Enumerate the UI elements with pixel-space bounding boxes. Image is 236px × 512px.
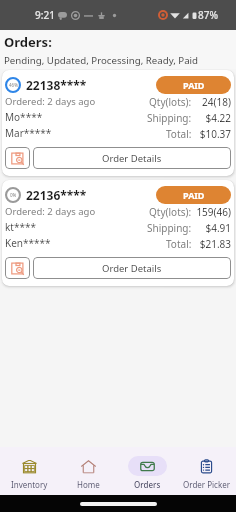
staticText: Qty(lots):: [149, 95, 192, 109]
staticText: Mar*****: [5, 126, 52, 140]
staticText: $4.91: [195, 221, 231, 235]
staticText: PAID: [183, 79, 205, 91]
staticText: Orders: [134, 479, 161, 490]
staticText: Ordered: 2 days ago: [5, 95, 96, 108]
staticText: kt****: [5, 220, 36, 234]
staticText: Order Picker: [183, 479, 231, 490]
staticText: Order Details: [102, 152, 162, 165]
staticText: PAID: [183, 189, 205, 201]
staticText: 22136****: [26, 187, 87, 203]
staticText: $10.37: [195, 127, 231, 141]
staticText: 0%: [10, 192, 17, 198]
button[interactable]: 46%: [2, 70, 234, 176]
button[interactable]: Track package: [5, 147, 30, 169]
staticText: Order Details: [102, 262, 162, 275]
staticText: Qty(lots):: [149, 205, 192, 219]
staticText: $4.22: [195, 111, 231, 125]
staticText: Total:: [166, 127, 192, 141]
staticText: Pending, Updated, Processing, Ready, Pai…: [4, 54, 199, 67]
button[interactable]: 0%: [2, 180, 234, 286]
staticText: Total:: [166, 237, 192, 251]
staticText: 87%: [198, 8, 218, 22]
staticText: Shipping:: [147, 111, 192, 125]
button[interactable]: Inventory: [0, 450, 59, 492]
staticText: 22138****: [26, 77, 87, 93]
staticText: Mo****: [5, 110, 43, 124]
button[interactable]: Home: [59, 450, 118, 492]
staticText: Shipping:: [147, 221, 192, 235]
staticText: Inventory: [11, 479, 48, 490]
button[interactable]: PAID: [156, 186, 231, 204]
button[interactable]: Order Details: [33, 257, 231, 279]
staticText: Home: [77, 479, 100, 490]
button[interactable]: Track package: [5, 257, 30, 279]
staticText: 9:21: [35, 8, 55, 22]
staticText: $21.83: [195, 237, 231, 251]
staticText: 159(46): [195, 205, 231, 219]
staticText: 24(18): [195, 95, 231, 109]
staticText: 46%: [9, 82, 18, 88]
staticText: Ken*****: [5, 236, 51, 250]
staticText: Ordered: 2 days ago: [5, 205, 96, 218]
button[interactable]: Orders: [118, 450, 177, 492]
button[interactable]: Order Details: [33, 147, 231, 169]
staticText: Orders:: [4, 33, 52, 51]
button[interactable]: PAID: [156, 76, 231, 94]
button[interactable]: Order Picker: [177, 450, 236, 492]
